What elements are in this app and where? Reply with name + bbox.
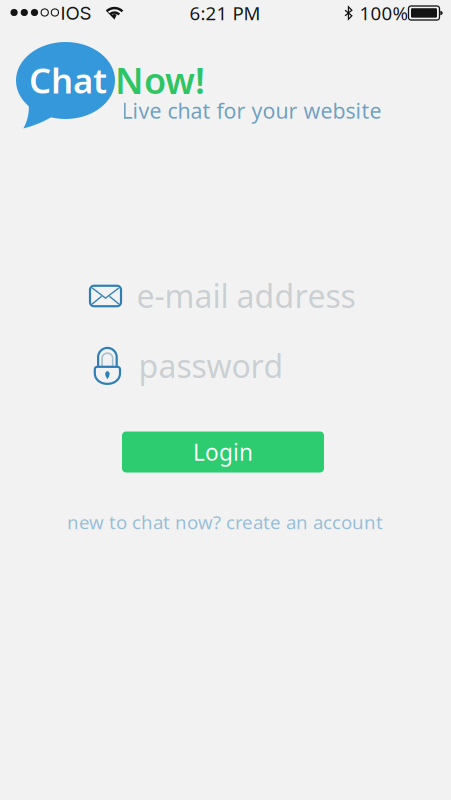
staticText: Now!: [115, 56, 205, 104]
staticText: Live chat for your website: [121, 96, 381, 125]
button[interactable]: Login: [122, 431, 324, 472]
button[interactable]: e-mail address: [89, 273, 369, 319]
staticText: 6:21 PM: [189, 1, 260, 25]
staticText: password: [138, 344, 283, 387]
staticText: IOS: [60, 2, 91, 24]
staticText: Chat: [29, 57, 107, 103]
staticText: e-mail address: [136, 274, 355, 317]
staticText: new to chat now? create an account: [67, 510, 383, 534]
button[interactable]: new to chat now? create an account: [60, 507, 390, 537]
staticText: 100%: [359, 1, 408, 25]
staticText: Login: [193, 437, 253, 467]
button[interactable]: password: [89, 341, 369, 389]
